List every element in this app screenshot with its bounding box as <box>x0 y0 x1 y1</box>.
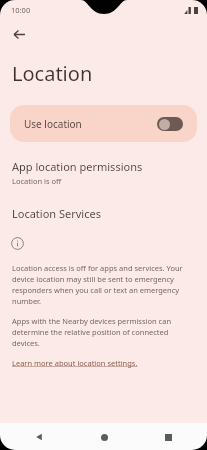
button[interactable]: App location permissions <box>0 157 207 188</box>
button[interactable]: Recent apps <box>155 424 181 450</box>
button[interactable]: Learn more about location settings. <box>12 358 138 368</box>
button[interactable]: Back <box>5 20 33 48</box>
button[interactable]: Use location <box>10 105 197 142</box>
staticText: 10:00 <box>11 5 31 15</box>
button[interactable]: Back <box>26 424 52 450</box>
button[interactable]: Location Services <box>0 204 207 223</box>
staticText: Location <box>12 60 93 87</box>
staticText: Location access is off for apps and serv… <box>12 263 195 306</box>
staticText: Use location <box>24 117 82 131</box>
button[interactable]: Home <box>91 424 117 450</box>
staticText: Apps with the Nearby devices permission … <box>12 316 195 348</box>
staticText: App location permissions <box>12 159 143 174</box>
staticText: Location is off <box>12 176 62 186</box>
